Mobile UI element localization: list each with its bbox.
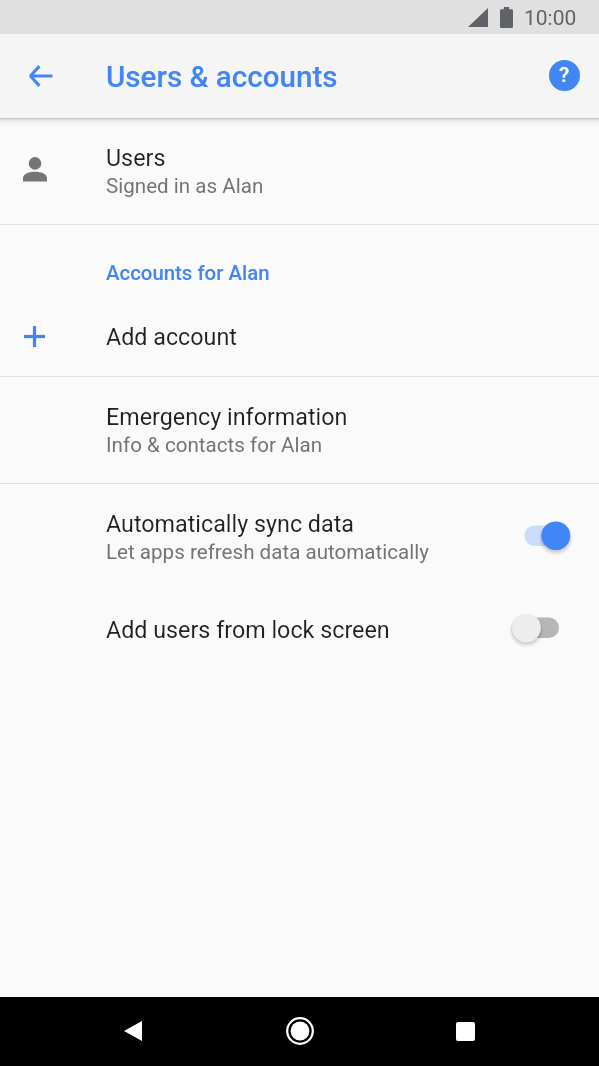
button[interactable]: Users	[0, 118, 599, 224]
staticText: Automatically sync data	[106, 510, 354, 537]
button[interactable]: Automatically sync data, on	[503, 513, 567, 561]
staticText: Emergency information	[106, 403, 348, 430]
staticText: ?	[559, 63, 570, 88]
staticText: Signed in as Alan	[106, 174, 264, 198]
button[interactable]: Add users from lock screen, off	[503, 605, 567, 653]
staticText: Let apps refresh data automatically	[106, 540, 430, 564]
button[interactable]: Home	[276, 1007, 324, 1055]
button[interactable]: Add account	[0, 297, 599, 376]
button[interactable]: Help	[540, 51, 588, 99]
button[interactable]: Back	[109, 1007, 157, 1055]
staticText: Users	[106, 144, 166, 171]
button[interactable]: Recent apps	[441, 1007, 489, 1055]
button[interactable]: Automatically sync data	[0, 484, 599, 590]
button[interactable]: Navigate up	[17, 52, 65, 100]
staticText: Users & accounts	[106, 60, 338, 95]
staticText: 10:00	[524, 6, 577, 31]
staticText: Add account	[106, 323, 237, 350]
button[interactable]: Add users from lock screen	[0, 590, 599, 668]
staticText: Accounts for Alan	[106, 261, 270, 285]
staticText: Add users from lock screen	[106, 616, 390, 643]
staticText: Info & contacts for Alan	[106, 433, 323, 457]
button[interactable]: Emergency information	[0, 377, 599, 483]
